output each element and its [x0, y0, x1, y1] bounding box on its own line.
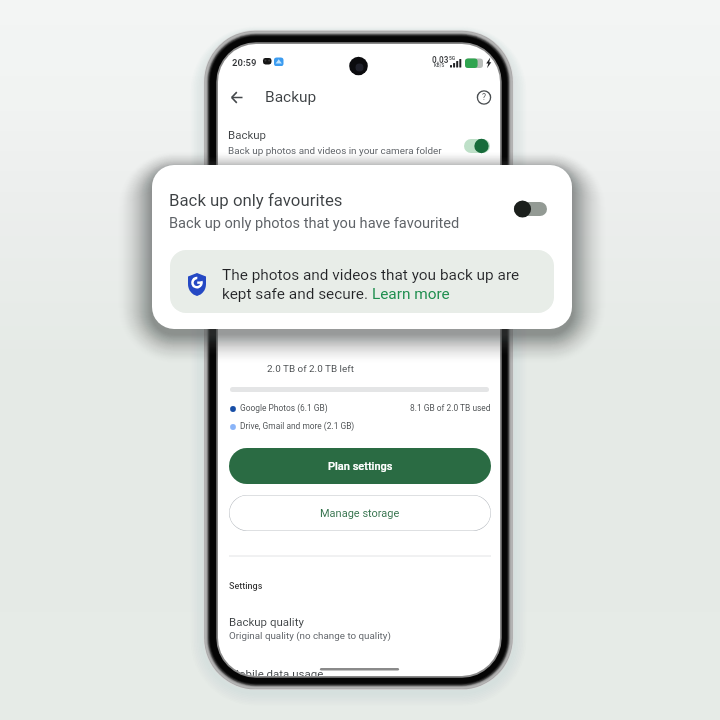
staticText: Mobile data usage	[229, 667, 324, 676]
staticText: Back up only photos that you have favour…	[169, 214, 460, 231]
button[interactable]: Manage storage	[229, 495, 491, 531]
staticText: Drive, Gmail and more (2.1 GB)	[240, 421, 355, 431]
button[interactable]: Back up only favourites	[507, 194, 555, 224]
staticText: Original quality (no change to quality)	[229, 630, 391, 641]
staticText: Backup	[228, 128, 267, 141]
staticText: Backup	[265, 88, 317, 106]
staticText: ?	[482, 92, 487, 102]
staticText: KB/S	[434, 63, 445, 68]
button[interactable]: Plan settings	[229, 448, 491, 484]
staticText: Back up only favourites	[169, 190, 343, 210]
staticText: Manage storage	[320, 507, 400, 520]
staticText: 8.1 GB of 2.0 TB used	[410, 403, 491, 413]
button[interactable]: Back	[222, 84, 250, 112]
button[interactable]: Help	[471, 84, 498, 111]
staticText: Google Photos (6.1 GB)	[240, 403, 328, 413]
staticText: Back up photos and videos in your camera…	[228, 145, 442, 157]
staticText: Plan settings	[328, 460, 393, 473]
staticText: Backup quality	[229, 615, 304, 628]
staticText: 5G	[449, 55, 456, 61]
button[interactable]: Backup quality	[218, 612, 500, 654]
staticText: 2.0 TB of 2.0 TB left	[267, 363, 354, 375]
staticText: The photos and videos that you back up a…	[222, 266, 520, 303]
staticText: 20:59	[232, 57, 257, 68]
staticText: 0.03	[432, 55, 449, 65]
staticText: Settings	[229, 581, 263, 592]
